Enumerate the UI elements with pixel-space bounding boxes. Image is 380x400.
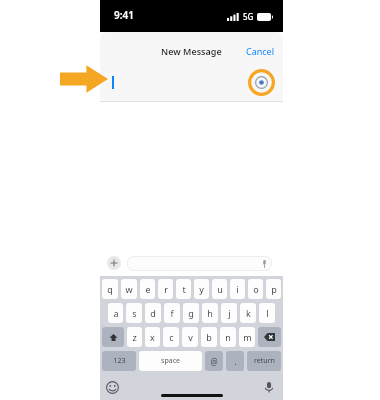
staticText: . [234, 356, 237, 367]
staticText: u [217, 283, 223, 295]
staticText: t [182, 283, 186, 295]
button[interactable]: q [102, 279, 118, 299]
button[interactable]: Emoji [106, 381, 119, 394]
button[interactable]: l [259, 303, 275, 323]
staticText: d [150, 307, 156, 319]
staticText: 5G [243, 11, 254, 22]
button[interactable]: n [220, 327, 236, 347]
button[interactable]: t [176, 279, 191, 299]
button[interactable]: . [226, 351, 244, 371]
button[interactable]: h [202, 303, 218, 323]
button[interactable]: u [212, 279, 227, 299]
staticText: q [107, 283, 113, 295]
button[interactable]: Add attachment [107, 256, 121, 270]
staticText: p [271, 283, 277, 295]
staticText: @ [210, 356, 218, 367]
staticText: s [132, 307, 137, 319]
button[interactable]: Cancel [238, 41, 283, 61]
staticText: m [243, 331, 252, 343]
staticText: l [266, 307, 269, 319]
button[interactable]: j [221, 303, 237, 323]
staticText: g [188, 307, 194, 319]
staticText: z [132, 331, 137, 343]
button[interactable]: x [145, 327, 160, 347]
button[interactable]: f [164, 303, 180, 323]
button[interactable]: Shift [102, 327, 124, 347]
button[interactable]: y [194, 279, 209, 299]
button[interactable]: return [247, 351, 281, 371]
staticText: return [254, 356, 275, 366]
button[interactable]: Dictate [263, 381, 275, 393]
button[interactable]: @ [205, 351, 223, 371]
staticText: New Message [161, 45, 222, 57]
button[interactable]: Add contact [255, 76, 268, 89]
staticText: x [150, 331, 155, 343]
staticText: a [113, 307, 119, 319]
staticText: Cancel [246, 45, 275, 57]
button[interactable]: m [239, 327, 255, 347]
staticText: n [225, 331, 231, 343]
button[interactable]: z [127, 327, 142, 347]
staticText: r [164, 283, 168, 295]
staticText: 9:41 [114, 8, 134, 22]
button[interactable]: a [108, 303, 123, 323]
button[interactable]: k [240, 303, 256, 323]
staticText: space [161, 356, 180, 366]
button[interactable]: e [140, 279, 155, 299]
button[interactable] [127, 256, 272, 271]
button[interactable]: w [121, 279, 137, 299]
button[interactable]: s [126, 303, 142, 323]
staticText: 123 [113, 356, 126, 366]
staticText: y [199, 283, 204, 295]
button[interactable]: p [266, 279, 281, 299]
staticText: i [236, 283, 239, 295]
button[interactable]: space [139, 351, 202, 371]
button[interactable]: r [158, 279, 173, 299]
staticText: h [207, 307, 213, 319]
button[interactable]: i [230, 279, 245, 299]
button[interactable]: d [145, 303, 161, 323]
button[interactable]: g [183, 303, 199, 323]
button[interactable]: b [201, 327, 217, 347]
staticText: b [206, 331, 212, 343]
button[interactable]: v [182, 327, 198, 347]
staticText: v [188, 331, 193, 343]
staticText: c [169, 331, 174, 343]
staticText: j [228, 307, 231, 319]
staticText: f [170, 307, 174, 319]
staticText: w [125, 283, 133, 295]
button[interactable]: Backspace [258, 327, 281, 347]
button[interactable]: o [248, 279, 263, 299]
staticText: e [145, 283, 151, 295]
button[interactable]: c [163, 327, 179, 347]
staticText: k [246, 307, 251, 319]
staticText: o [253, 283, 259, 295]
button[interactable]: 123 [102, 351, 136, 371]
